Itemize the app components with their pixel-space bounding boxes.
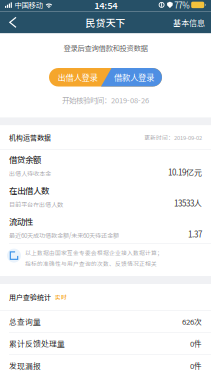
staticText: 借款人登录	[114, 71, 154, 83]
staticText: 借贷余额	[9, 153, 41, 165]
staticText: 用户查验统计	[9, 292, 51, 302]
staticText: 目前平台在出借人数	[9, 200, 63, 209]
staticText: 实时	[55, 293, 67, 301]
staticText: 以上数据由国家互金专委会根据企业接入数据计算；	[25, 249, 163, 257]
staticText: 机构运营数据	[9, 132, 51, 142]
staticText: 13533人	[174, 197, 202, 209]
button[interactable]: 出借人登录	[49, 68, 106, 86]
staticText: 最近60天成功借款金额/未来60天待还金额	[9, 231, 119, 240]
staticText: 0件	[190, 338, 202, 349]
staticText: 民贷天下	[85, 15, 125, 30]
button[interactable]: 返回	[0, 11, 26, 33]
staticText: 流动性	[9, 215, 33, 227]
staticText: 指标的准确性与用户查询的次数、反馈情况正相关	[25, 259, 157, 268]
staticText: 累计反馈处理量	[9, 338, 65, 349]
staticText: 发现漏报	[9, 360, 41, 371]
staticText: 10.19亿元	[168, 166, 202, 178]
staticText: 626次	[182, 316, 202, 327]
button[interactable]: 基本信息	[167, 11, 211, 33]
staticText: 基本信息	[173, 17, 205, 28]
staticText: 0件	[190, 360, 202, 371]
staticText: 中国移动	[14, 0, 42, 10]
staticText: 出借人登录	[57, 71, 97, 83]
button[interactable]: 借款人登录	[106, 68, 162, 86]
staticText: 更新时间：2019-09-02	[144, 133, 202, 141]
staticText: 1.37	[188, 228, 202, 240]
staticText: 14:54	[94, 0, 117, 12]
staticText: 在出借人数	[9, 184, 49, 196]
staticText: 77%	[174, 0, 189, 11]
staticText: 开始核验时间：2019-08-26	[62, 94, 149, 105]
staticText: 登录后查询借款和投资数据	[63, 42, 147, 53]
staticText: 出借人待收本金	[9, 169, 51, 178]
staticText: 总查询量	[9, 316, 41, 327]
